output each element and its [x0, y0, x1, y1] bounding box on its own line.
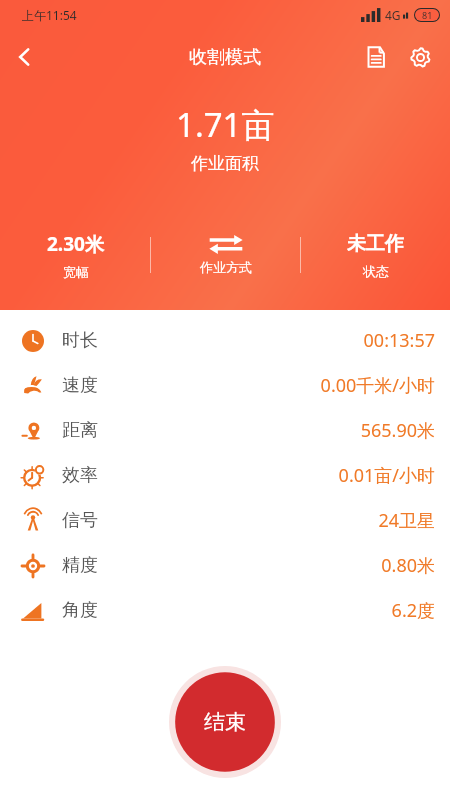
staticText: 0.01亩/小时: [338, 463, 435, 488]
staticText: 81: [422, 9, 433, 21]
staticText: 效率: [62, 464, 98, 487]
staticText: 2.30米: [47, 231, 104, 257]
staticText: 上午11:54: [22, 7, 77, 23]
button[interactable]: 2.30米: [0, 226, 150, 284]
staticText: 速度: [62, 374, 98, 397]
staticText: 作业面积: [191, 153, 259, 174]
staticText: 时长: [62, 329, 98, 352]
button[interactable]: Records: [354, 35, 398, 79]
staticText: 收割模式: [189, 46, 261, 69]
staticText: 状态: [363, 263, 389, 279]
button[interactable]: Settings: [398, 35, 442, 79]
staticText: 00:13:57: [363, 328, 435, 353]
button[interactable]: 未工作: [301, 226, 450, 284]
staticText: 未工作: [347, 232, 404, 256]
staticText: 信号: [62, 509, 98, 532]
staticText: 精度: [62, 554, 98, 577]
button[interactable]: 精度: [0, 543, 450, 588]
button[interactable]: Back: [0, 32, 50, 82]
button[interactable]: 速度: [0, 363, 450, 408]
staticText: 565.90米: [360, 418, 435, 443]
staticText: 6.2度: [391, 598, 435, 623]
button[interactable]: 作业方式: [151, 226, 300, 284]
staticText: 4G: [385, 7, 401, 23]
button[interactable]: 结束: [169, 666, 281, 778]
button[interactable]: 时长: [0, 318, 450, 363]
staticText: 宽幅: [63, 264, 89, 280]
button[interactable]: 效率: [0, 453, 450, 498]
button[interactable]: 距离: [0, 408, 450, 453]
button[interactable]: 信号: [0, 498, 450, 543]
staticText: 距离: [62, 419, 98, 442]
staticText: 24卫星: [378, 508, 435, 533]
staticText: 0.80米: [381, 553, 435, 578]
staticText: 0.00千米/小时: [320, 373, 435, 398]
staticText: 1.71亩: [176, 102, 275, 147]
staticText: 作业方式: [200, 259, 252, 275]
staticText: 结束: [204, 709, 246, 735]
button[interactable]: 角度: [0, 588, 450, 633]
staticText: 角度: [62, 599, 98, 622]
